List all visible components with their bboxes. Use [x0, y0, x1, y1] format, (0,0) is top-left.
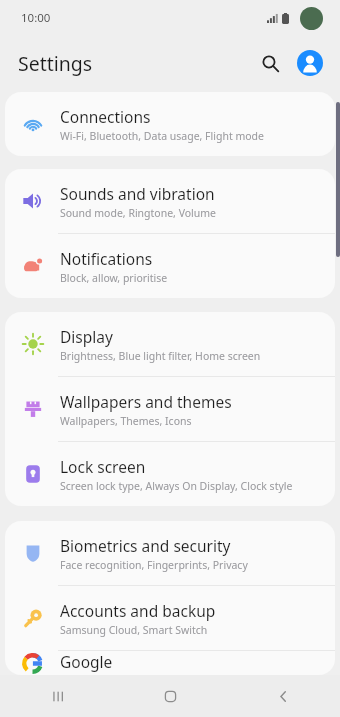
staticText: Settings — [18, 50, 93, 77]
staticText: Samsung Cloud, Smart Switch — [60, 623, 208, 637]
button[interactable]: Connections — [5, 92, 335, 156]
button[interactable]: Recents — [0, 675, 114, 717]
staticText: Block, allow, prioritise — [60, 271, 168, 285]
staticText: Screen lock type, Always On Display, Clo… — [60, 479, 293, 493]
button[interactable]: Biometrics and security — [5, 521, 335, 585]
staticText: Face recognition, Fingerprints, Privacy — [60, 558, 248, 572]
button[interactable]: Wallpapers and themes — [5, 377, 335, 441]
button[interactable]: Accounts and backup — [5, 586, 335, 650]
button[interactable]: Display — [5, 312, 335, 376]
staticText: Lock screen — [60, 456, 146, 477]
staticText: Connections — [60, 106, 151, 127]
staticText: Sound mode, Ringtone, Volume — [60, 206, 217, 220]
staticText: Sounds and vibration — [60, 183, 215, 204]
staticText: Display — [60, 326, 113, 347]
button[interactable]: Lock screen — [5, 442, 335, 506]
button[interactable]: Google — [5, 651, 335, 675]
staticText: 10:00 — [21, 10, 51, 26]
staticText: Brightness, Blue light filter, Home scre… — [60, 349, 261, 363]
staticText: Wallpapers, Themes, Icons — [60, 414, 192, 428]
staticText: Wallpapers and themes — [60, 391, 232, 412]
button[interactable]: Search — [253, 46, 287, 80]
staticText: Biometrics and security — [60, 535, 231, 556]
button[interactable]: Back — [227, 675, 340, 717]
button[interactable]: Home — [114, 675, 227, 717]
staticText: Notifications — [60, 248, 153, 269]
staticText: Wi-Fi, Bluetooth, Data usage, Flight mod… — [60, 129, 265, 143]
staticText: Accounts and backup — [60, 600, 216, 621]
staticText: Google — [60, 651, 113, 672]
button[interactable]: Notifications — [5, 234, 335, 298]
button[interactable]: Account — [293, 46, 327, 80]
button[interactable]: Sounds and vibration — [5, 169, 335, 233]
